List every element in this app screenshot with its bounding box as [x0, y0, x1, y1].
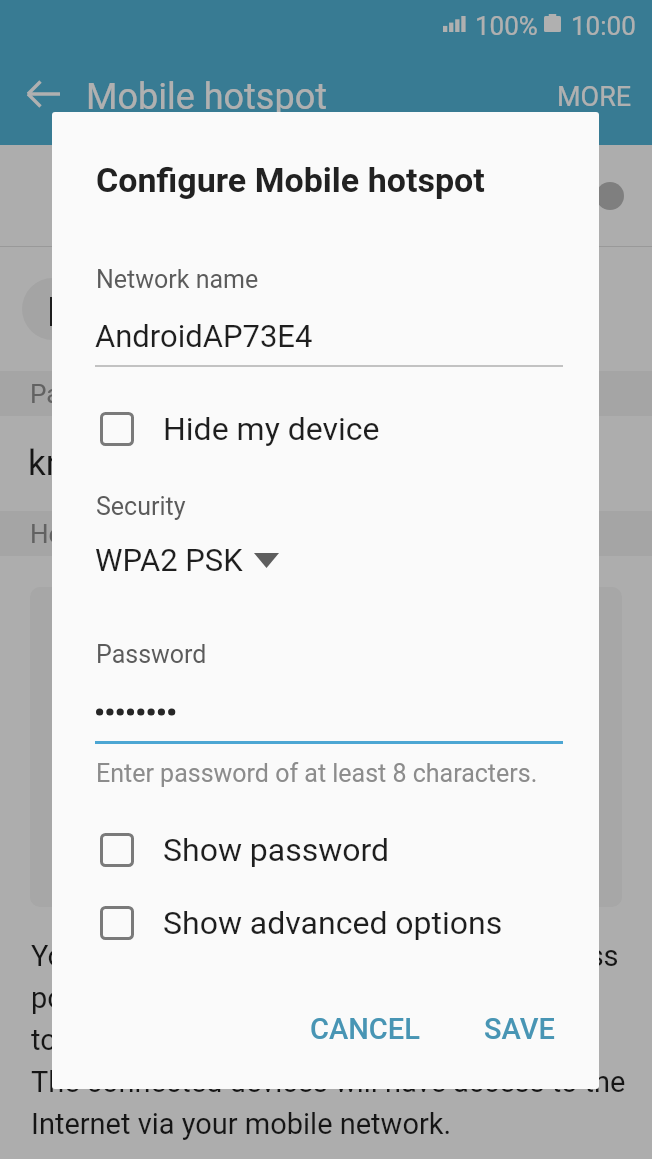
staticText: AndroidAP73E4	[95, 318, 313, 354]
staticText: Enter password of at least 8 characters.	[96, 759, 538, 788]
button[interactable]: SAVE	[470, 1000, 569, 1058]
staticText: Configure Mobile hotspot	[96, 160, 485, 200]
staticText: WPA2 PSK	[95, 542, 243, 578]
staticText: Password	[96, 640, 207, 669]
button[interactable]: Navigate up	[15, 66, 71, 122]
button[interactable]: MORE	[540, 66, 649, 128]
staticText: Password	[30, 379, 145, 409]
staticText: Network name	[96, 265, 259, 294]
staticText: MORE	[557, 81, 632, 113]
button[interactable]: CANCEL	[296, 1000, 434, 1058]
staticText: Internet via your mobile network.	[31, 1107, 452, 1141]
staticText: knowledge	[28, 443, 197, 484]
staticText: You can let other devices use wireless a…	[31, 939, 619, 973]
staticText: 10:00	[571, 11, 636, 41]
staticText: CANCEL	[310, 1012, 420, 1046]
staticText: Show advanced options	[163, 904, 503, 942]
button[interactable]: WPA2 PSK	[95, 542, 279, 578]
staticText: Hide my device	[163, 410, 380, 448]
button[interactable]: Show advanced options	[52, 904, 599, 942]
staticText: Show password	[163, 831, 390, 869]
staticText: Mobile hotspot	[86, 76, 327, 118]
staticText: Security	[96, 492, 186, 521]
staticText: portable Wi-Fi hotspot that shares your …	[31, 981, 596, 1015]
staticText: The connected devices will have access t…	[31, 1065, 626, 1099]
staticText: Mobile hotspot	[72, 176, 293, 215]
staticText: Help	[30, 519, 84, 549]
staticText: to the Internet with other nearby device…	[31, 1023, 555, 1057]
button[interactable]: Show password	[52, 831, 599, 869]
button[interactable]: Mobile hotspot	[0, 145, 652, 246]
button[interactable]: Hide my device	[52, 410, 599, 448]
staticText: SAVE	[484, 1012, 555, 1046]
staticText: 100%	[475, 11, 538, 41]
